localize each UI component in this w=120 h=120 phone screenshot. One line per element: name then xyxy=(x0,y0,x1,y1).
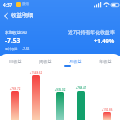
button[interactable]: Back xyxy=(0,10,11,21)
button[interactable] xyxy=(103,112,111,120)
staticText: 累计收益 -7.53 xyxy=(5,47,30,51)
staticText: 月收益 xyxy=(69,59,82,64)
button[interactable] xyxy=(77,91,85,120)
button[interactable]: 年收益 xyxy=(90,54,120,67)
staticText: 微信 xyxy=(22,2,30,7)
button[interactable]: 日收益 xyxy=(0,54,30,67)
staticText: +1548.62 xyxy=(25,71,47,75)
staticText: 收益明细 xyxy=(11,12,34,19)
staticText: 年收益 xyxy=(99,59,112,64)
staticText: +769.72 xyxy=(4,87,26,91)
staticText: 4:37 xyxy=(3,2,13,8)
staticText: -7.53 xyxy=(5,36,21,45)
staticText: +768.41 xyxy=(70,86,92,90)
staticText: 本期收益(元) xyxy=(5,30,27,35)
staticText: +935.02 xyxy=(49,88,71,92)
staticText: +192.86 xyxy=(96,108,118,112)
staticText: +1.49% xyxy=(94,37,115,45)
button[interactable] xyxy=(56,92,64,120)
button[interactable]: 月收益 xyxy=(60,54,90,67)
staticText: 近7日持有年化收益率 xyxy=(68,29,115,36)
button[interactable]: 周收益 xyxy=(30,54,60,67)
button[interactable] xyxy=(11,91,19,120)
staticText: 日收益 xyxy=(9,59,22,64)
staticText: 周收益 xyxy=(39,59,52,64)
button[interactable] xyxy=(32,75,40,120)
